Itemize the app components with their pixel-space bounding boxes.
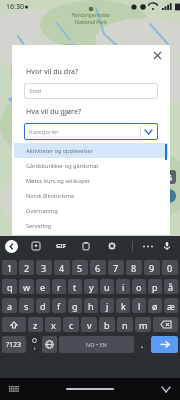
staticText: 7 (113, 262, 119, 274)
staticText: i (168, 191, 171, 202)
staticText: f (57, 300, 61, 312)
staticText: l (138, 300, 141, 312)
button[interactable]: 5 (72, 260, 88, 275)
button[interactable]: Møter, kurs og selskaper (14, 173, 168, 188)
staticText: e (40, 281, 46, 293)
staticText: National Park (75, 19, 107, 26)
staticText: 4 (59, 262, 65, 274)
button[interactable]: 0 (162, 260, 178, 275)
staticText: 1 (7, 262, 13, 274)
button[interactable]: Close (150, 48, 164, 62)
button[interactable]: 6 (90, 260, 106, 275)
button[interactable]: p (148, 279, 162, 294)
button[interactable]: o (132, 279, 146, 294)
staticText: Overnatting (26, 207, 58, 215)
button[interactable]: v (81, 317, 97, 332)
button[interactable]: 3 (36, 260, 52, 275)
button[interactable]: n (117, 317, 133, 332)
staticText: g (72, 300, 78, 312)
button[interactable]: Enter (151, 336, 178, 353)
button[interactable]: Keyboard layout (8, 383, 20, 395)
staticText: t (73, 281, 77, 293)
staticText: , (34, 343, 36, 351)
staticText: k (121, 300, 126, 312)
button[interactable]: å (164, 279, 178, 294)
button[interactable]: i (116, 279, 130, 294)
button[interactable]: w (19, 279, 34, 294)
staticText: n (122, 319, 128, 331)
button[interactable]: u (100, 279, 114, 294)
button[interactable]: 2 (19, 260, 34, 275)
button[interactable]: GIF (56, 242, 66, 250)
staticText: GIF (56, 242, 66, 250)
button[interactable]: ?123 (2, 336, 26, 353)
button[interactable]: Period (136, 336, 149, 353)
button[interactable]: r (52, 279, 66, 294)
staticText: å (168, 281, 174, 293)
staticText: Gårdsbutikker og gårdsmat (26, 162, 99, 170)
button[interactable]: h (84, 298, 98, 313)
button[interactable]: e (36, 279, 50, 294)
button[interactable]: s (19, 298, 34, 313)
staticText: Hvor vil du dra? (26, 67, 79, 77)
staticText: Norsk Økoturisme (26, 192, 75, 200)
button[interactable]: l (132, 298, 146, 313)
staticText: a (7, 300, 13, 312)
button[interactable]: d (36, 298, 50, 313)
staticText: Kategorier (29, 128, 59, 136)
button[interactable]: Emoji and comma (28, 336, 40, 353)
button[interactable]: k (116, 298, 130, 313)
staticText: 9 (149, 262, 155, 274)
button[interactable]: m (135, 317, 151, 332)
button[interactable]: f (52, 298, 66, 313)
button[interactable]: Gårdsbutikker og gårdsmat (14, 158, 168, 173)
button[interactable]: Voice input (161, 240, 173, 252)
staticText: j (106, 300, 109, 312)
staticText: . (141, 339, 144, 350)
button[interactable]: More options (141, 240, 153, 252)
button[interactable]: c (63, 317, 79, 332)
staticText: 3 (41, 262, 47, 274)
staticText: p (152, 281, 158, 293)
button[interactable]: 7 (108, 260, 124, 275)
button[interactable]: Information (162, 189, 176, 203)
staticText: s (24, 300, 29, 312)
button[interactable]: Norsk Økoturisme (14, 188, 168, 203)
button[interactable]: g (68, 298, 82, 313)
button[interactable]: x (45, 317, 61, 332)
button[interactable]: æ (164, 298, 178, 313)
button[interactable]: 8 (126, 260, 142, 275)
staticText: q (7, 281, 13, 293)
button[interactable]: j (100, 298, 114, 313)
button[interactable]: 1 (2, 260, 17, 275)
staticText: i (122, 281, 125, 293)
button[interactable]: ø (148, 298, 162, 313)
button[interactable]: y (84, 279, 98, 294)
staticText: m (139, 319, 148, 331)
button[interactable]: NO • EN (59, 336, 134, 353)
button[interactable]: Servering (14, 218, 168, 233)
button[interactable]: Backspace (153, 317, 178, 332)
staticText: o (136, 281, 142, 293)
button[interactable]: Overnatting (14, 203, 168, 218)
button[interactable]: Stickers (30, 240, 42, 252)
button[interactable]: a (2, 298, 17, 313)
button[interactable]: Change language (42, 336, 57, 353)
button[interactable]: 9 (144, 260, 160, 275)
button[interactable]: Shift (2, 317, 26, 332)
button[interactable]: q (2, 279, 17, 294)
button[interactable]: Aktiviteter og opplevelser (14, 143, 168, 158)
staticText: Hva vil du gjøre? (26, 107, 82, 117)
button[interactable]: 4 (54, 260, 70, 275)
button[interactable]: Kategorier (24, 123, 158, 140)
button[interactable]: b (99, 317, 115, 332)
button[interactable]: Clipboard (80, 240, 92, 252)
button[interactable]: t (68, 279, 82, 294)
button[interactable]: z (28, 317, 43, 332)
button[interactable]: Back (5, 240, 18, 253)
button[interactable]: Hide keyboard (160, 383, 172, 395)
button[interactable]: Lock map (162, 170, 176, 184)
button[interactable]: Sted (24, 83, 158, 99)
staticText: v (87, 319, 92, 331)
button[interactable]: Settings (106, 240, 118, 252)
